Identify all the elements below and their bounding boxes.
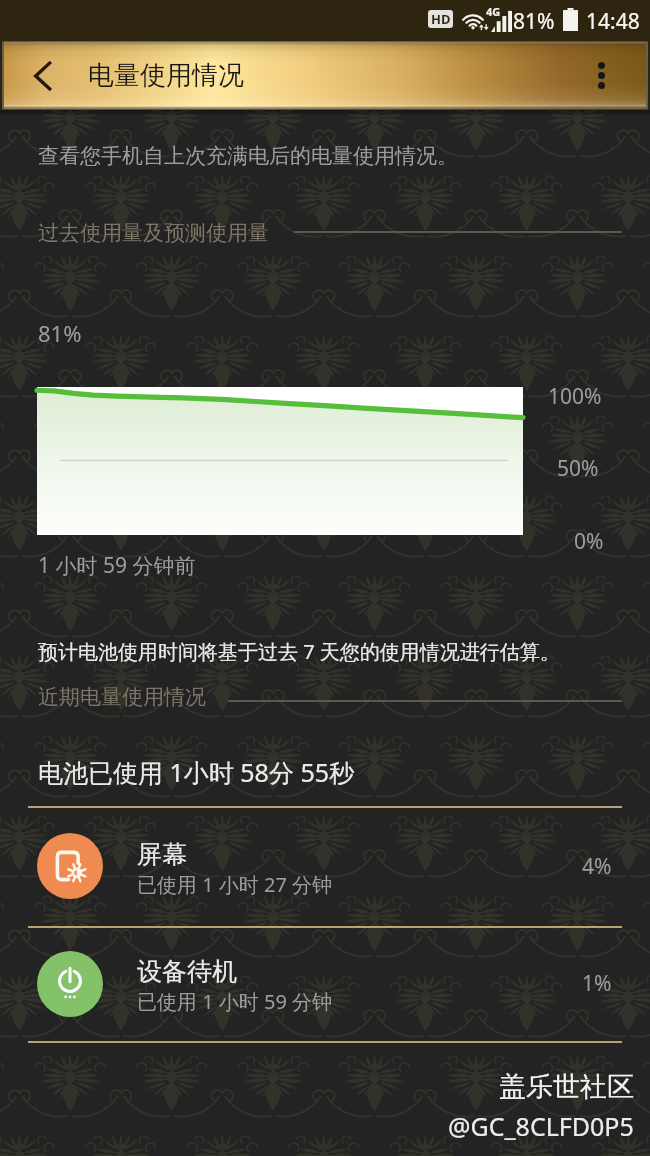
staticText: HD bbox=[431, 10, 451, 28]
staticText: 14:48 bbox=[586, 7, 640, 36]
staticText: 过去使用量及预测使用量 bbox=[38, 220, 269, 246]
staticText: 100% bbox=[548, 382, 602, 411]
staticText: 0% bbox=[574, 527, 604, 556]
button[interactable]: 设备待机 bbox=[0, 926, 650, 1041]
staticText: 屏幕 bbox=[137, 839, 187, 870]
staticText: 电池已使用 1小时 58分 55秒 bbox=[38, 755, 355, 789]
staticText: 已使用 1 小时 27 分钟 bbox=[137, 871, 333, 898]
staticText: 81% bbox=[38, 318, 82, 348]
staticText: 4% bbox=[582, 852, 612, 881]
button[interactable]: More options bbox=[586, 41, 650, 110]
staticText: 4G bbox=[486, 4, 501, 19]
button[interactable]: Back bbox=[0, 41, 80, 110]
staticText: 电量使用情况 bbox=[88, 59, 244, 92]
staticText: 已使用 1 小时 59 分钟 bbox=[137, 988, 333, 1015]
staticText: @GC_8CLFD0P5 bbox=[448, 1109, 634, 1143]
staticText: 1% bbox=[582, 969, 612, 998]
staticText: 设备待机 bbox=[137, 956, 237, 987]
staticText: 预计电池使用时间将基于过去 7 天您的使用情况进行估算。 bbox=[38, 638, 560, 665]
staticText: 盖乐世社区 bbox=[499, 1070, 634, 1104]
staticText: 81% bbox=[513, 7, 555, 36]
button[interactable]: 屏幕 bbox=[0, 806, 650, 926]
staticText: 1 小时 59 分钟前 bbox=[38, 551, 196, 580]
staticText: 近期电量使用情况 bbox=[38, 684, 206, 710]
staticText: 50% bbox=[557, 454, 599, 483]
staticText: 查看您手机自上次充满电后的电量使用情况。 bbox=[38, 143, 458, 169]
